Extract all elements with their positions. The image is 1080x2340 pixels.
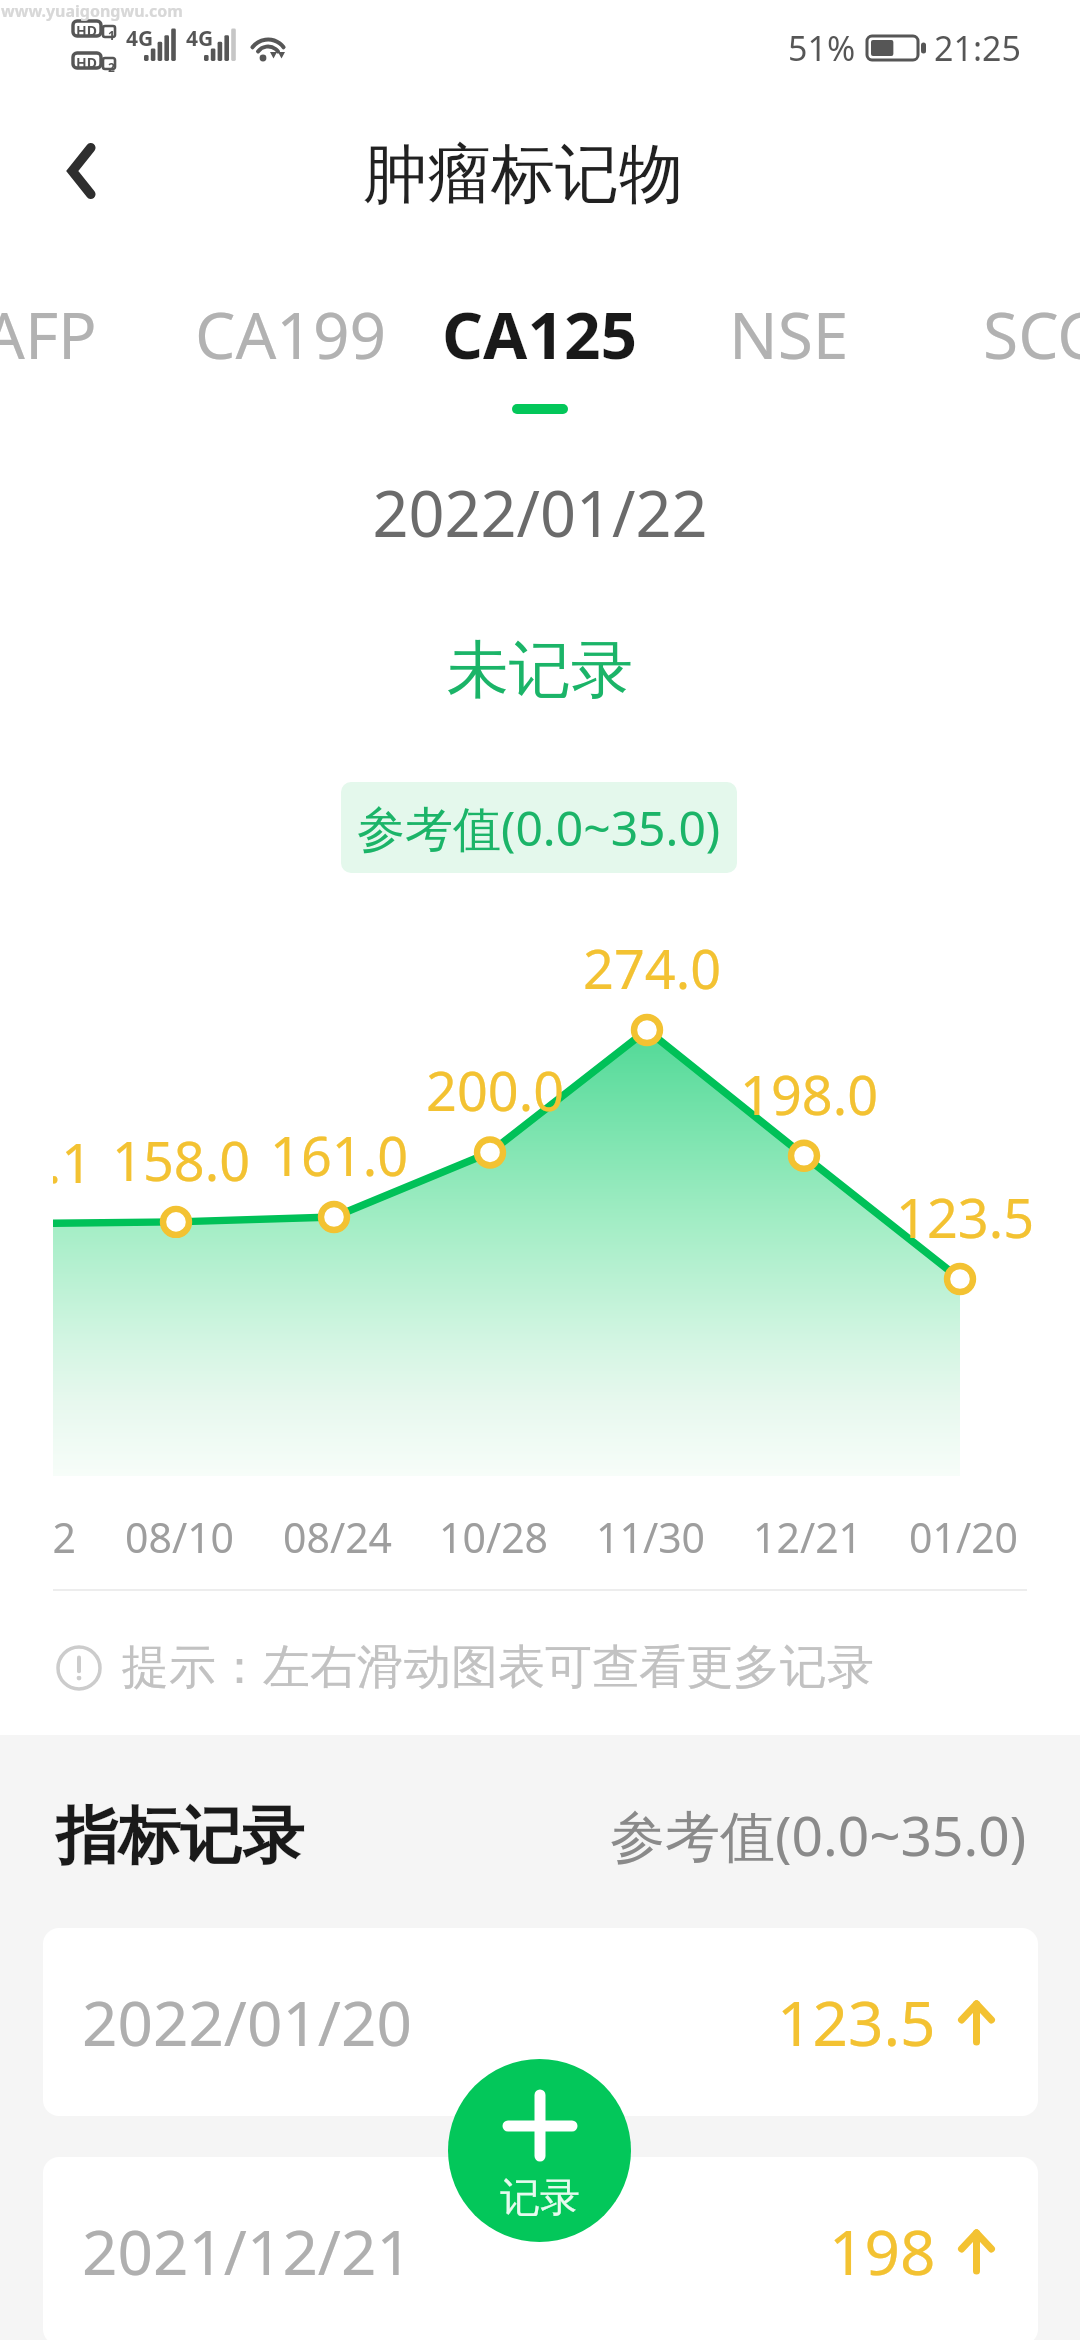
staticText: CA199: [195, 291, 387, 378]
staticText: 198: [829, 2209, 936, 2293]
staticText: 200.0: [426, 1053, 565, 1127]
staticText: 11/30: [596, 1509, 706, 1565]
staticText: 07/12: [53, 1509, 77, 1565]
staticText: HD: [76, 53, 97, 72]
button[interactable]: Add record: [448, 2059, 631, 2242]
button[interactable]: 2021/12/21: [43, 2157, 1038, 2340]
button[interactable]: CA199: [181, 278, 401, 383]
staticText: AFP: [0, 291, 97, 378]
staticText: 提示：左右滑动图表可查看更多记录: [122, 1638, 874, 1697]
staticText: 2022/01/22: [0, 470, 1080, 556]
staticText: 161.0: [270, 1118, 409, 1192]
staticText: 157.1: [53, 1125, 93, 1199]
staticText: 未记录: [0, 631, 1080, 709]
staticText: 记录: [500, 2172, 580, 2222]
staticText: 2021/12/21: [82, 2209, 412, 2293]
staticText: 4G: [186, 24, 214, 53]
staticText: 21:25: [934, 25, 1021, 71]
button[interactable]: NSE: [679, 278, 899, 383]
staticText: 12/21: [753, 1509, 863, 1565]
staticText: CA125: [442, 291, 638, 378]
staticText: 参考值(0.0~35.0): [357, 795, 721, 861]
button[interactable]: SCC: [930, 278, 1080, 383]
staticText: 10/28: [439, 1509, 549, 1565]
staticText: NSE: [729, 291, 849, 378]
staticText: 01/20: [909, 1509, 1019, 1565]
staticText: 274.0: [583, 931, 722, 1005]
staticText: 1: [108, 27, 115, 43]
staticText: 指标记录: [56, 1797, 304, 1875]
staticText: 198.0: [740, 1057, 879, 1131]
button[interactable]: CA125: [430, 278, 650, 383]
staticText: 参考值(0.0~35.0): [610, 1797, 1027, 1872]
button[interactable]: 参考值(0.0~35.0): [341, 782, 737, 873]
staticText: 2: [108, 59, 115, 75]
staticText: SCC: [983, 291, 1080, 378]
staticText: 2022/01/20: [82, 1980, 412, 2064]
staticText: 08/10: [125, 1509, 235, 1565]
button[interactable]: 2022/01/20: [43, 1928, 1038, 2116]
button[interactable]: Back: [38, 131, 118, 211]
staticText: 158.0: [112, 1123, 251, 1197]
staticText: 123.5: [777, 1980, 936, 2064]
staticText: www.yuaigongwu.com: [1, 0, 183, 22]
staticText: 08/24: [283, 1509, 393, 1565]
staticText: HD: [76, 21, 97, 40]
staticText: 51%: [788, 25, 856, 71]
staticText: 4G: [126, 24, 154, 53]
staticText: 123.5: [896, 1180, 1035, 1254]
button[interactable]: AFP: [0, 278, 150, 383]
staticText: 肿瘤标记物: [363, 134, 683, 215]
